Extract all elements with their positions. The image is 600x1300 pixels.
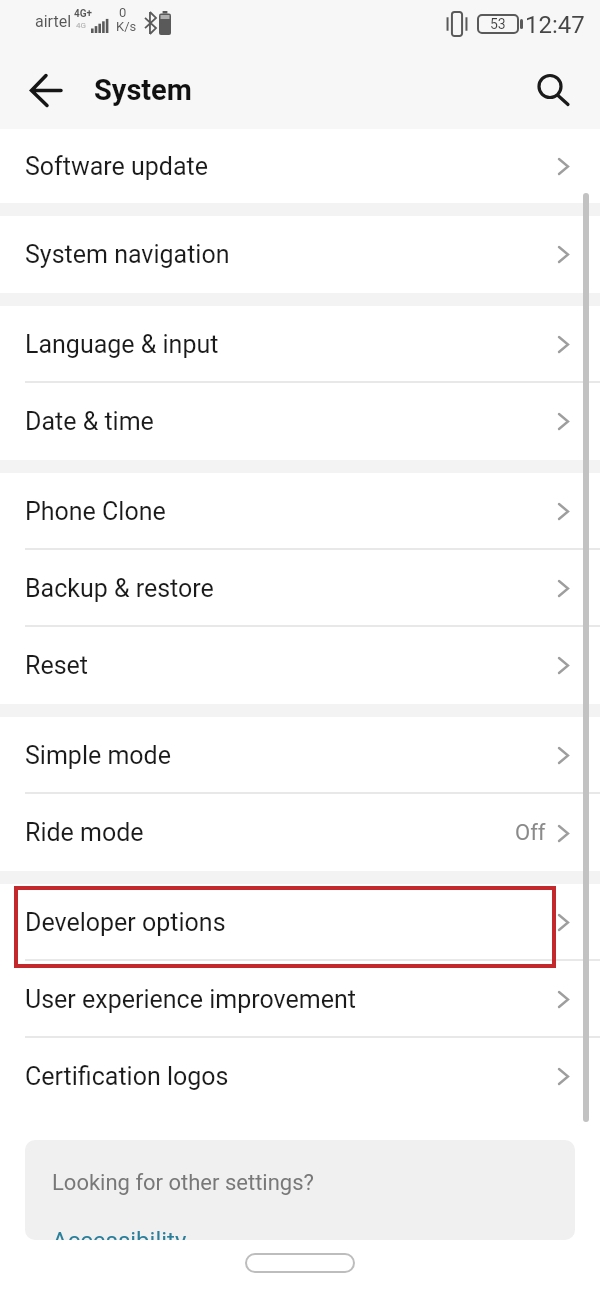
staticText: Date & time xyxy=(25,407,154,436)
button[interactable]: Looking for other settings? xyxy=(25,1140,575,1240)
staticText: 12:47 xyxy=(525,11,585,39)
button[interactable]: Reset xyxy=(0,627,600,704)
button[interactable]: User experience improvement xyxy=(0,961,600,1038)
staticText: 53 xyxy=(490,16,506,32)
button[interactable]: System navigation xyxy=(0,216,600,293)
staticText: User experience improvement xyxy=(25,985,356,1014)
staticText: K/s xyxy=(116,19,137,34)
staticText: Language & input xyxy=(25,330,219,359)
button[interactable]: Certification logos xyxy=(0,1038,600,1115)
button[interactable]: Phone Clone xyxy=(0,473,600,550)
staticText: Off xyxy=(515,820,546,846)
staticText: Accessibility xyxy=(52,1227,187,1240)
staticText: System xyxy=(94,73,192,107)
staticText: 0 xyxy=(119,5,127,20)
button[interactable]: Date & time xyxy=(0,383,600,460)
staticText: Simple mode xyxy=(25,741,171,770)
staticText: Ride mode xyxy=(25,818,144,847)
staticText: 4G+ xyxy=(74,8,93,20)
staticText: 4G xyxy=(76,21,86,30)
button[interactable]: Backup & restore xyxy=(0,550,600,627)
staticText: Looking for other settings? xyxy=(52,1170,314,1196)
staticText: airtel xyxy=(35,12,72,31)
staticText: System navigation xyxy=(25,240,230,269)
button[interactable]: Simple mode xyxy=(0,717,600,794)
button[interactable] xyxy=(245,1253,355,1273)
staticText: Software update xyxy=(25,152,209,181)
staticText: Certification logos xyxy=(25,1062,229,1091)
button[interactable] xyxy=(30,74,62,107)
button[interactable]: Language & input xyxy=(0,306,600,383)
button[interactable]: Ride mode xyxy=(0,794,600,871)
button[interactable]: Software update xyxy=(0,129,600,203)
staticText: Developer options xyxy=(25,908,226,937)
button[interactable]: Developer options xyxy=(0,884,600,961)
staticText: Phone Clone xyxy=(25,497,166,526)
staticText: Reset xyxy=(25,651,89,680)
staticText: Backup & restore xyxy=(25,574,214,603)
button[interactable] xyxy=(536,72,572,108)
